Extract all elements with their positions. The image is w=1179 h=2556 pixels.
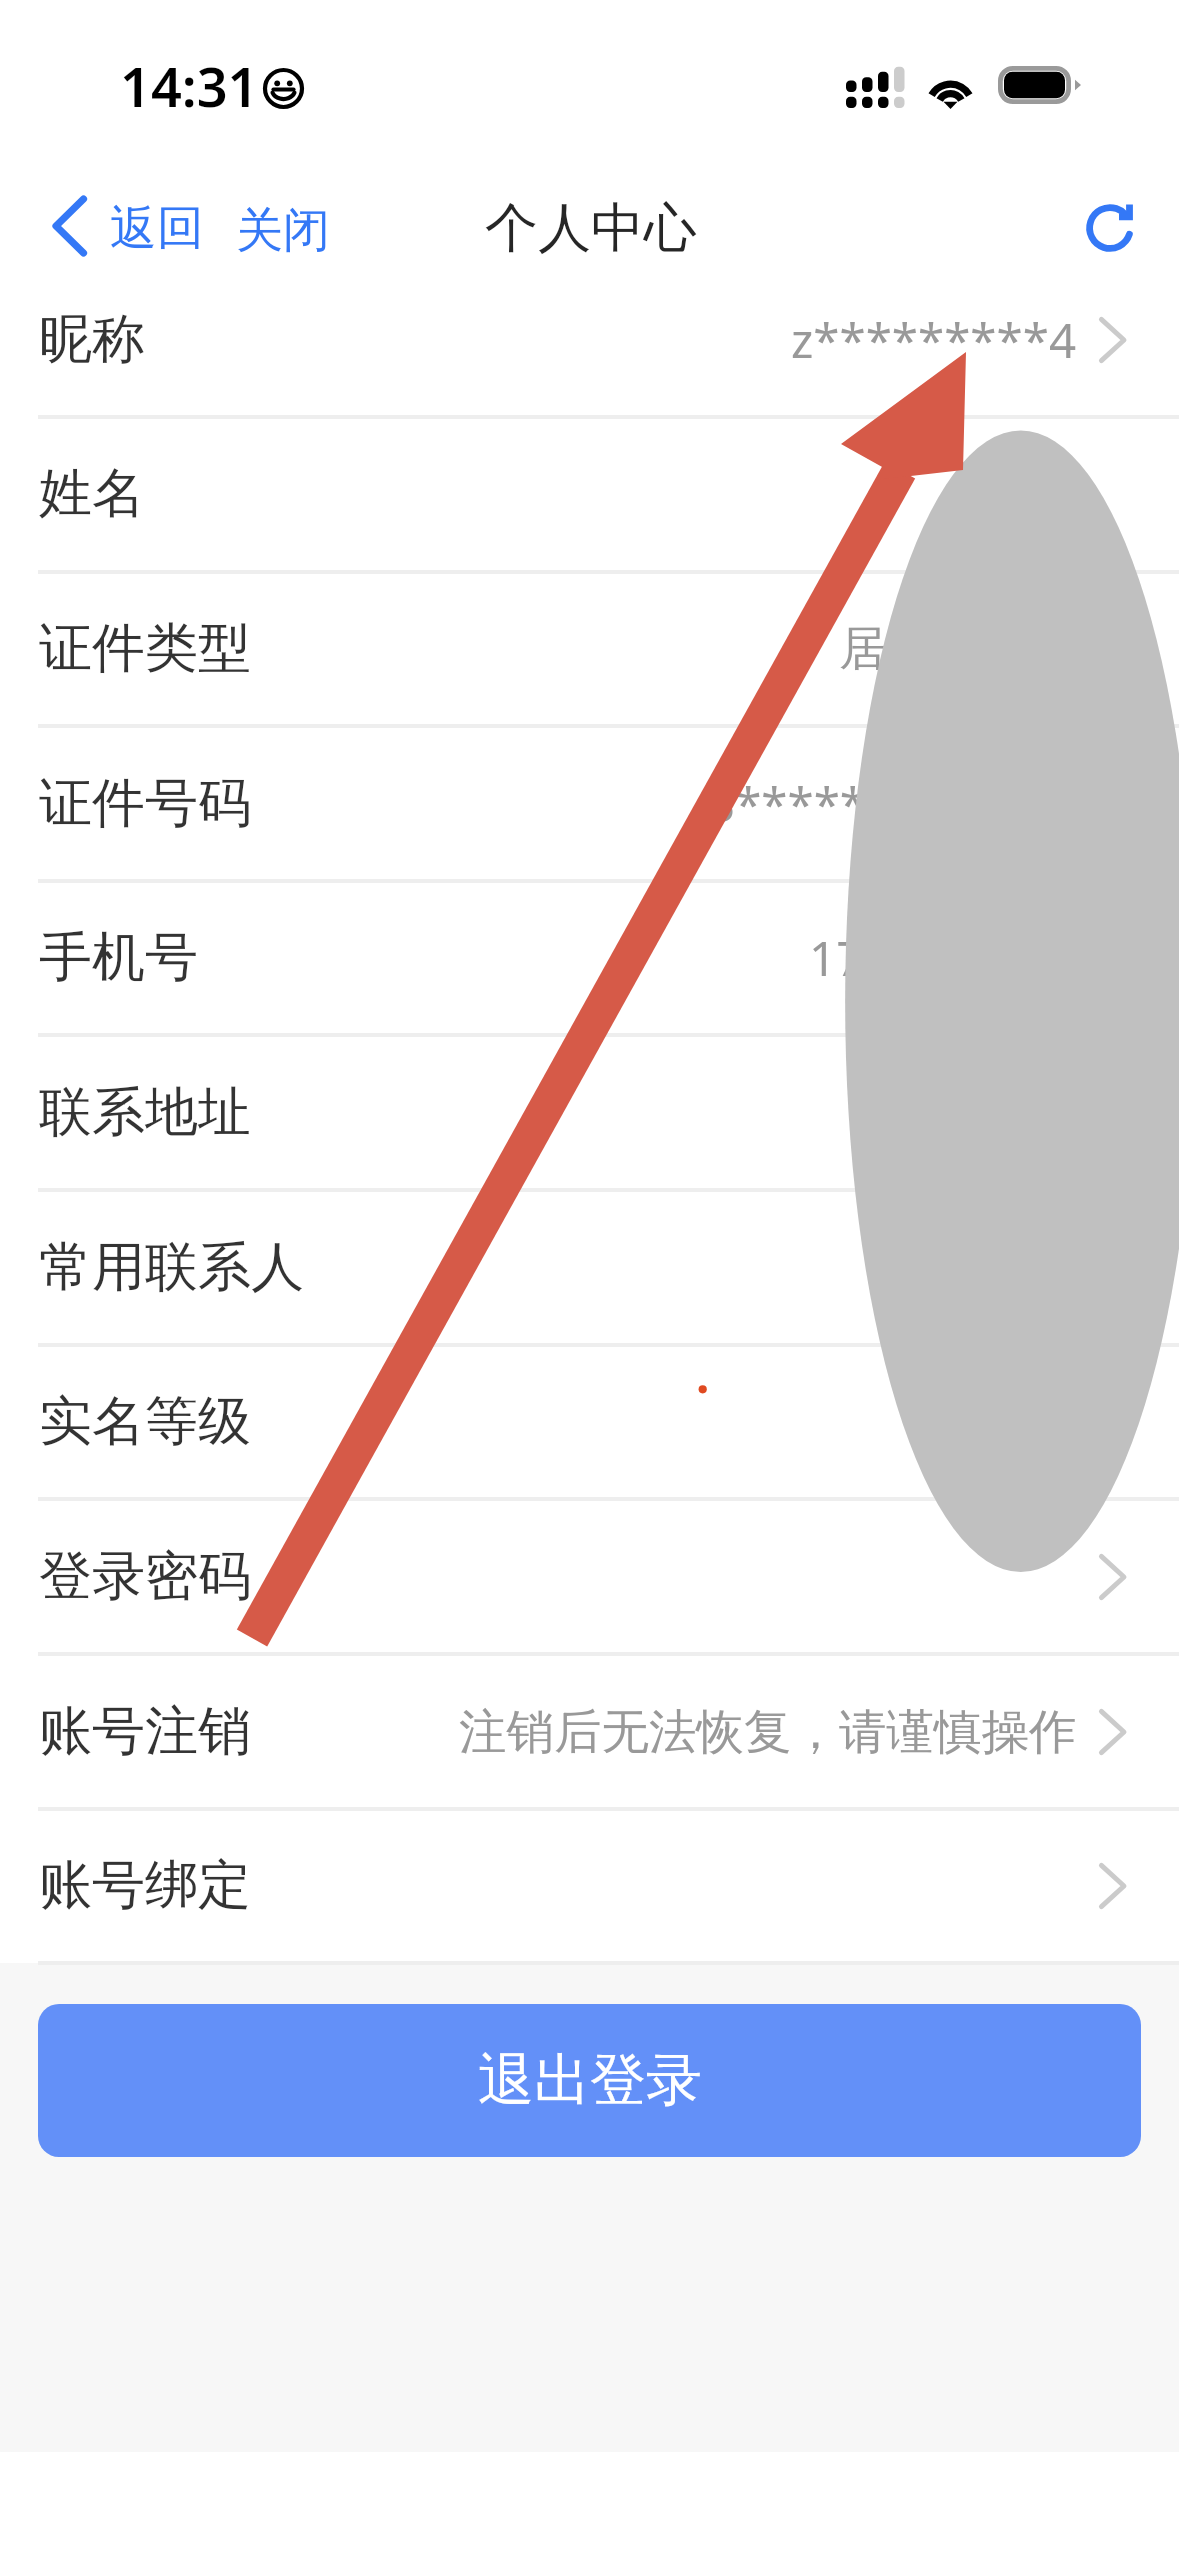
staticText: 常用联系人: [39, 1234, 304, 1301]
staticText: 个人中心: [485, 195, 697, 262]
button[interactable]: 账号绑定: [0, 1808, 1179, 1963]
staticText: 3************1: [708, 771, 1077, 836]
button[interactable]: 联系地址: [0, 1035, 1179, 1190]
staticText: 姓名: [39, 460, 145, 527]
button[interactable]: 常用联系人: [0, 1190, 1179, 1345]
staticText: 联系地址: [39, 1079, 251, 1146]
button[interactable]: 退出登录: [38, 2004, 1141, 2157]
button[interactable]: 手机号: [0, 880, 1179, 1035]
button[interactable]: 关闭: [224, 191, 342, 270]
staticText: 注销后无法恢复，请谨慎操作: [459, 1702, 1077, 1762]
staticText: 昵称: [39, 306, 145, 373]
staticText: 登录密码: [39, 1543, 251, 1610]
button[interactable]: 证件类型: [0, 571, 1179, 726]
staticText: z*********4: [791, 307, 1077, 372]
button[interactable]: 实名等级: [0, 1344, 1179, 1499]
staticText: 居民身份证: [839, 619, 1077, 679]
button[interactable]: 姓名: [0, 416, 1179, 571]
staticText: 手机号: [39, 924, 198, 991]
staticText: 退出登录: [478, 2045, 702, 2116]
staticText: 账号注销: [39, 1698, 251, 1765]
staticText: 实名等级: [39, 1388, 251, 1455]
staticText: 账号绑定: [39, 1852, 251, 1919]
button[interactable]: 账号注销: [0, 1654, 1179, 1809]
button[interactable]: 登录密码: [0, 1499, 1179, 1654]
staticText: 证件号码: [39, 770, 251, 837]
button[interactable]: 昵称: [0, 262, 1179, 417]
button[interactable]: 刷新: [1064, 182, 1156, 274]
staticText: 178****234: [809, 925, 1077, 990]
staticText: 证件类型: [39, 615, 251, 682]
staticText: 14:31: [120, 49, 259, 123]
button[interactable]: 返回: [40, 186, 216, 267]
staticText: 返回: [110, 199, 204, 258]
button[interactable]: 证件号码: [0, 726, 1179, 881]
